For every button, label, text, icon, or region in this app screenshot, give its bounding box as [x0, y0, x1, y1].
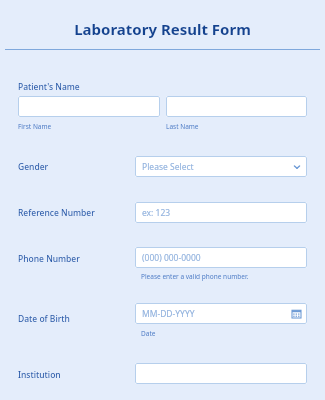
- staticText: Phone Number: [18, 253, 80, 265]
- staticText: MM-DD-YYYY: [142, 308, 195, 320]
- button[interactable]: (000) 000-0000: [135, 247, 307, 268]
- button[interactable]: [166, 96, 307, 117]
- staticText: (000) 000-0000: [142, 252, 201, 264]
- staticText: Please Select: [142, 161, 194, 173]
- staticText: Institution: [18, 369, 61, 381]
- button[interactable]: [18, 96, 160, 117]
- staticText: Gender: [18, 161, 49, 173]
- staticText: Last Name: [166, 122, 199, 131]
- staticText: Patient's Name: [18, 81, 80, 93]
- staticText: Reference Number: [18, 207, 95, 219]
- staticText: Laboratory Result Form: [0, 19, 325, 39]
- other: Open gender dropdown: [293, 163, 301, 171]
- staticText: ex: 123: [142, 207, 171, 219]
- button[interactable]: [135, 363, 307, 384]
- button[interactable]: ex: 123: [135, 202, 307, 223]
- staticText: Date: [141, 329, 156, 338]
- button[interactable]: Please Select: [135, 156, 307, 177]
- other: Pick date: [292, 309, 301, 318]
- staticText: Please enter a valid phone number.: [141, 272, 249, 281]
- staticText: First Name: [18, 122, 52, 131]
- button[interactable]: MM-DD-YYYY: [135, 303, 307, 324]
- staticText: Date of Birth: [18, 313, 70, 325]
